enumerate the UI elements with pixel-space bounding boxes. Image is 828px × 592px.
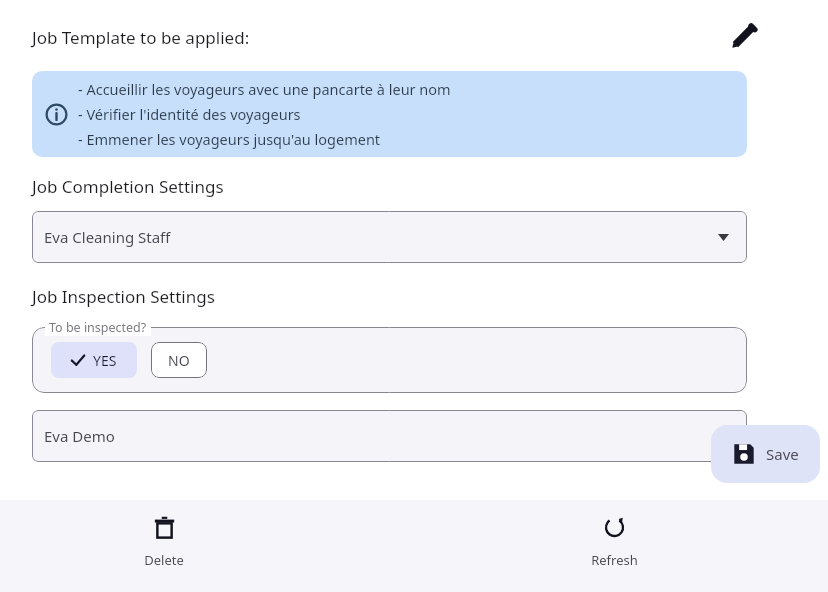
button[interactable]: Eva Cleaning Staff xyxy=(32,211,747,263)
staticText: - Vérifier l'identité des voyageurs xyxy=(78,104,301,124)
staticText: Eva Demo xyxy=(44,426,115,446)
button[interactable]: Edit job template xyxy=(722,14,766,58)
staticText: YES xyxy=(93,351,117,370)
staticText: Refresh xyxy=(591,551,638,569)
staticText: Job Template to be applied: xyxy=(32,26,250,49)
staticText: Delete xyxy=(144,551,184,569)
staticText: Job Completion Settings xyxy=(32,175,224,198)
button[interactable]: YES xyxy=(51,342,137,378)
button[interactable]: Save xyxy=(711,425,820,483)
button[interactable]: - Accueillir les voyageurs avec une panc… xyxy=(32,71,747,157)
staticText: - Accueillir les voyageurs avec une panc… xyxy=(78,79,451,99)
staticText: NO xyxy=(168,351,190,370)
staticText: Eva Cleaning Staff xyxy=(44,227,171,247)
button[interactable]: NO xyxy=(151,342,207,378)
button[interactable]: Eva Demo xyxy=(32,410,747,462)
button[interactable]: Delete xyxy=(110,516,218,569)
button[interactable]: Refresh xyxy=(560,516,668,569)
staticText: - Emmener les voyageurs jusqu'au logemen… xyxy=(78,129,381,149)
staticText: Job Inspection Settings xyxy=(32,285,215,308)
staticText: Save xyxy=(766,444,799,464)
staticText: To be inspected? xyxy=(49,319,147,336)
